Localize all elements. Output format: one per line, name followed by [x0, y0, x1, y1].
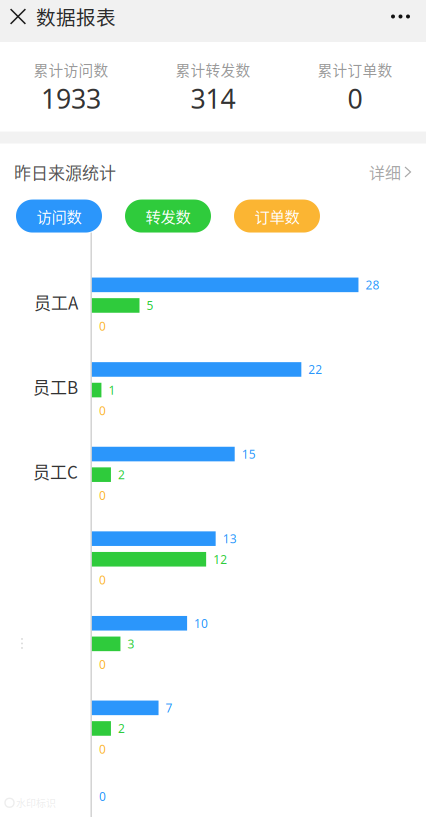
- staticText: 314: [190, 80, 235, 116]
- staticText: 昨日来源统计: [14, 160, 116, 184]
- staticText: 0: [99, 656, 106, 673]
- staticText: 1: [108, 382, 115, 398]
- staticText: 7: [165, 700, 172, 716]
- staticText: 累计转发数: [175, 59, 250, 80]
- staticText: 0: [99, 572, 106, 588]
- staticText: 13: [223, 530, 237, 547]
- staticText: 详细: [369, 160, 401, 184]
- button[interactable]: 订单数: [234, 200, 320, 233]
- staticText: 员工C: [33, 459, 78, 483]
- button[interactable]: 访问数: [16, 200, 102, 233]
- staticText: 0: [99, 487, 106, 503]
- button[interactable]: Close: [0, 0, 36, 33]
- button[interactable]: 转发数: [125, 200, 211, 233]
- staticText: 员工A: [34, 290, 78, 314]
- button[interactable]: 详细: [369, 152, 412, 192]
- staticText: 5: [146, 297, 153, 314]
- staticText: 2: [118, 720, 125, 737]
- staticText: 累计访问数: [33, 59, 108, 80]
- staticText: 累计订单数: [317, 59, 392, 80]
- staticText: 1933: [41, 80, 101, 116]
- staticText: 访问数: [36, 205, 81, 227]
- staticText: 员工B: [33, 374, 78, 399]
- staticText: 3: [127, 636, 134, 652]
- staticText: 0: [99, 318, 106, 334]
- staticText: 12: [213, 551, 227, 567]
- staticText: 订单数: [254, 205, 299, 227]
- staticText: 15: [242, 446, 256, 462]
- staticText: 0: [347, 80, 362, 116]
- staticText: 数据报表: [36, 2, 116, 31]
- staticText: 10: [194, 615, 208, 631]
- staticText: 0: [99, 402, 106, 419]
- staticText: 水印标识: [16, 795, 56, 810]
- staticText: 0: [99, 741, 106, 757]
- staticText: 2: [118, 466, 125, 483]
- staticText: 28: [365, 277, 379, 293]
- staticText: 22: [308, 361, 322, 378]
- button[interactable]: More options: [375, 0, 426, 33]
- staticText: 转发数: [145, 205, 190, 227]
- staticText: 0: [99, 788, 106, 804]
